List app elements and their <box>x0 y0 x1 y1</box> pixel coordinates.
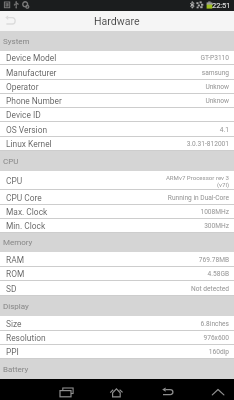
staticText: Resolution <box>6 333 46 343</box>
staticText: RAM <box>6 255 24 265</box>
staticText: PPI <box>6 347 19 357</box>
staticText: Manufacturer <box>6 68 57 78</box>
staticText: Display <box>3 302 29 311</box>
staticText: GT-P3110 <box>200 54 229 62</box>
staticText: Hardware <box>94 15 140 27</box>
button[interactable]: Manufacturer <box>0 65 234 80</box>
button[interactable]: Operator <box>0 80 234 94</box>
staticText: Device Model <box>6 53 57 63</box>
button[interactable]: Phone Number <box>0 94 234 108</box>
button[interactable]: Back <box>159 381 178 400</box>
staticText: Memory <box>3 238 33 247</box>
button[interactable]: Home <box>107 381 126 400</box>
button[interactable]: Min. Clock <box>0 219 234 233</box>
button[interactable]: CPU <box>0 171 234 190</box>
staticText: Unknow <box>205 83 229 91</box>
staticText: 1008MHz <box>200 208 229 216</box>
staticText: CPU Core <box>6 193 42 203</box>
button[interactable]: Linux Kernel <box>0 137 234 151</box>
staticText: 4.58GB <box>207 270 229 278</box>
staticText: samsung <box>201 69 229 77</box>
staticText: 3.0.31-812001 <box>186 140 229 148</box>
staticText: Linux Kernel <box>6 139 52 149</box>
staticText: ARMv7 Processor rev 3 <box>165 174 229 181</box>
staticText: 769.78MB <box>198 256 229 264</box>
staticText: 976x600 <box>203 334 229 342</box>
staticText: CPU <box>3 157 19 166</box>
staticText: (v7l) <box>216 181 229 188</box>
button[interactable]: Resolution <box>0 331 234 345</box>
button[interactable]: RAM <box>0 252 234 267</box>
staticText: ROM <box>6 269 25 279</box>
staticText: CPU <box>6 176 23 186</box>
staticText: System <box>3 37 30 46</box>
button[interactable]: ROM <box>0 267 234 281</box>
button[interactable]: Device ID <box>0 108 234 122</box>
button[interactable]: Max. Clock <box>0 205 234 219</box>
button[interactable]: SD <box>0 281 234 296</box>
staticText: Operator <box>6 82 39 92</box>
button[interactable]: CPU Core <box>0 190 234 205</box>
button[interactable]: Navigate back <box>0 11 26 31</box>
staticText: Size <box>6 319 22 329</box>
button[interactable]: Show menu <box>209 381 228 400</box>
staticText: Unknow <box>205 97 229 105</box>
button[interactable]: OS Version <box>0 122 234 137</box>
staticText: 300MHz <box>204 222 229 230</box>
button[interactable]: Recent apps <box>57 381 76 400</box>
staticText: Device ID <box>6 110 41 120</box>
button[interactable]: Size <box>0 316 234 331</box>
staticText: Phone Number <box>6 96 62 106</box>
staticText: Battery <box>3 365 29 374</box>
staticText: 4.1 <box>219 126 229 134</box>
staticText: Running in Dual-Core <box>167 194 229 202</box>
staticText: SD <box>6 284 17 294</box>
staticText: 160dip <box>208 348 229 356</box>
staticText: Min. Clock <box>6 221 46 231</box>
staticText: 22:51 <box>212 1 231 10</box>
staticText: OS Version <box>6 125 48 135</box>
button[interactable]: Device Model <box>0 51 234 65</box>
button[interactable]: PPI <box>0 345 234 359</box>
staticText: Max. Clock <box>6 207 48 217</box>
staticText: Not detected <box>191 285 229 293</box>
staticText: 6.8inches <box>200 320 229 328</box>
